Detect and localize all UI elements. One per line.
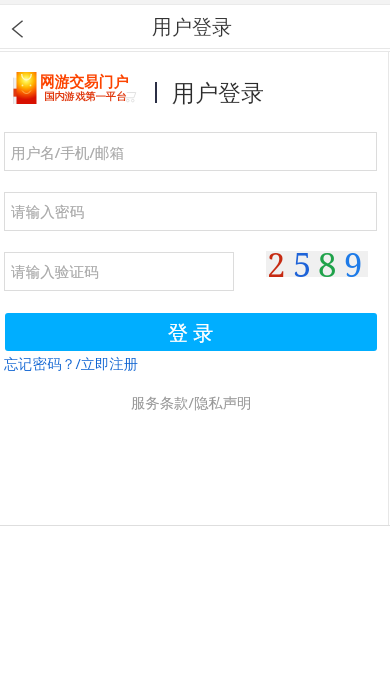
button[interactable]: 请输入密码 [4,192,377,231]
button[interactable]: 网游交易门户 国内游戏第一平台 [13,71,129,105]
button[interactable]: Back [0,4,36,48]
button[interactable]: 登 录 [5,313,377,351]
staticText: 用户名/手机/邮箱 [11,142,125,162]
staticText: 5 [293,242,312,287]
staticText: 国内游戏第一平台 [44,90,127,103]
button[interactable]: 用户名/手机/邮箱 [4,132,377,171]
staticText: 9 [344,242,363,287]
button[interactable]: 忘记密码？/立即注册 [4,354,138,374]
button[interactable]: 请输入验证码 [4,252,234,291]
staticText: 用户登录 [152,15,232,40]
staticText: 服务条款/隐私声明 [131,393,252,413]
staticText: 登 录 [168,319,214,346]
button[interactable]: 服务条款/隐私声明 [131,393,252,413]
button[interactable]: 验证码 [266,251,368,277]
staticText: 忘记密码？/立即注册 [4,354,138,374]
staticText: 2 [267,242,286,287]
staticText: 请输入密码 [11,203,84,221]
staticText: 请输入验证码 [11,263,99,281]
staticText: 网游交易门户 [40,73,129,92]
staticText: 用户登录 [172,79,264,108]
staticText: 8 [318,242,337,287]
